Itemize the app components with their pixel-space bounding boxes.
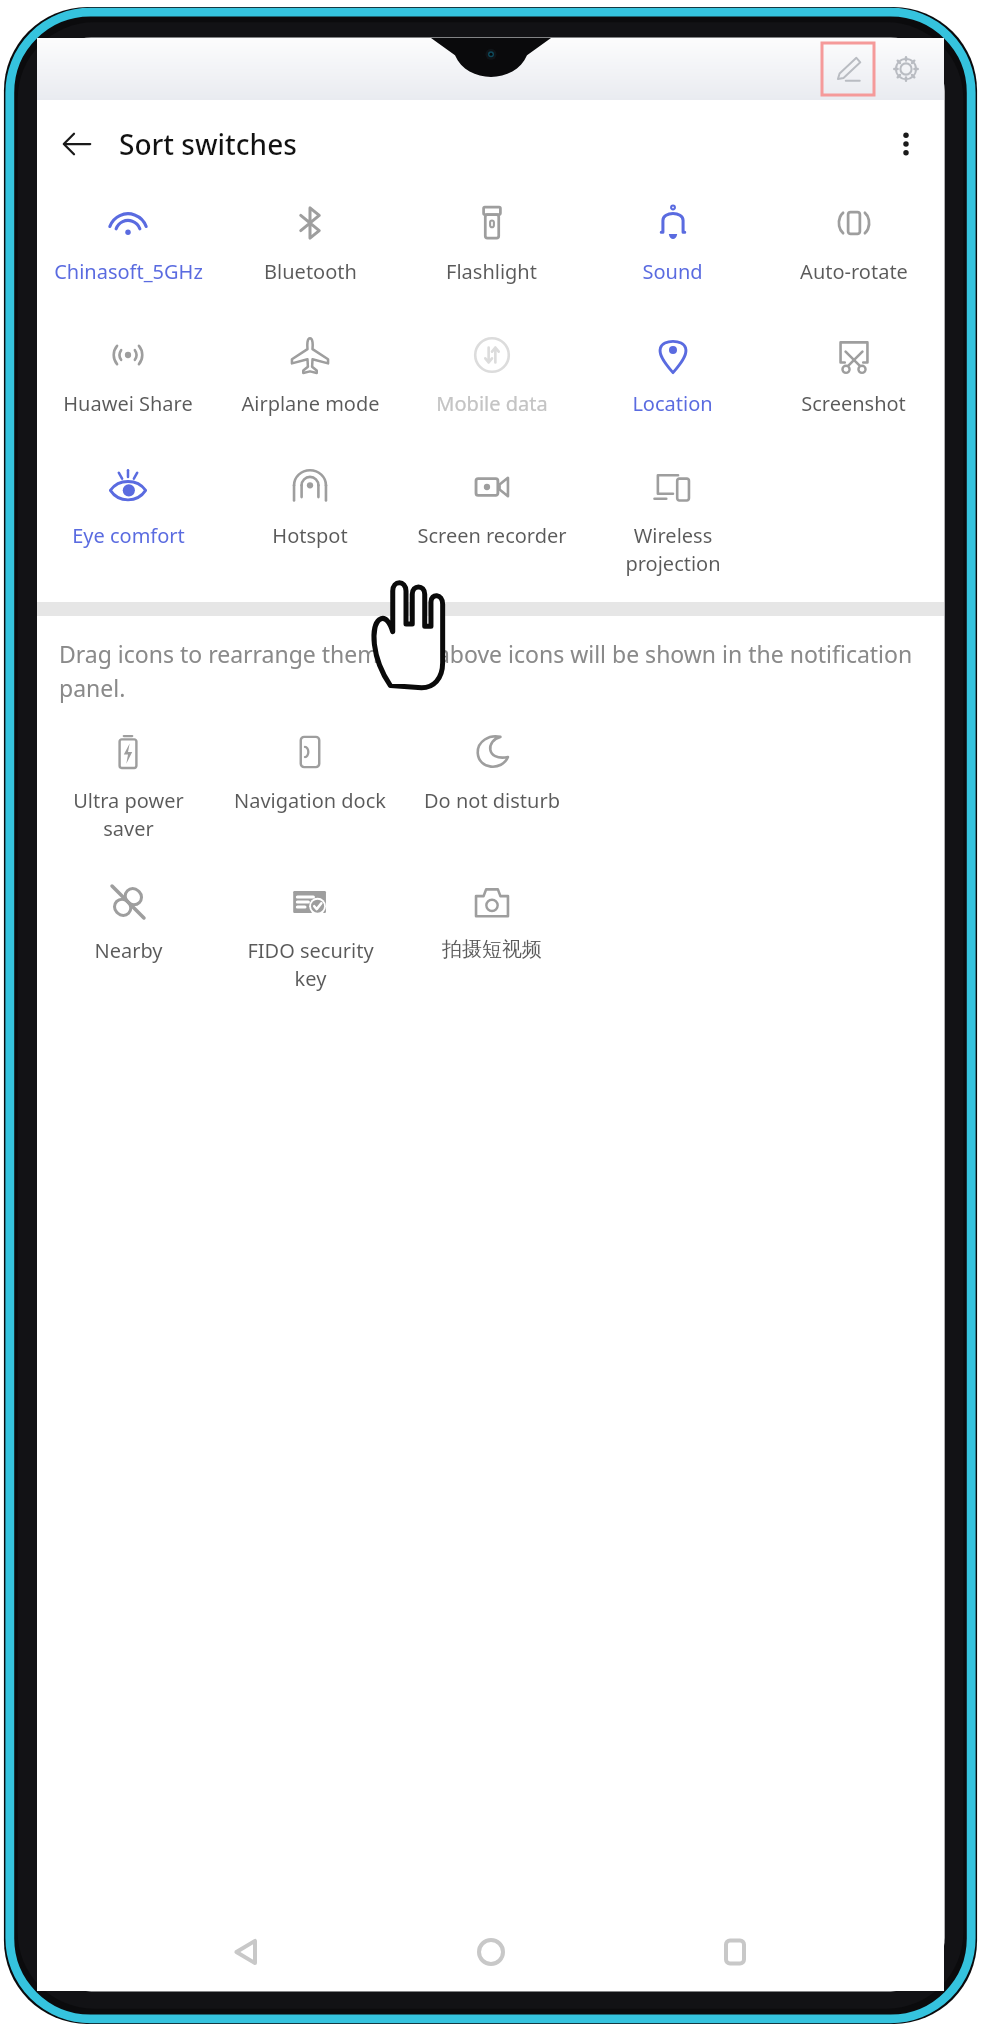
staticText: Wireless projection bbox=[625, 522, 721, 577]
staticText: Navigation dock bbox=[234, 787, 386, 814]
staticText: Chinasoft_5GHz bbox=[54, 258, 203, 285]
staticText: Auto-rotate bbox=[800, 258, 908, 285]
button[interactable]: Location bbox=[582, 320, 763, 452]
staticText: Bluetooth bbox=[264, 258, 357, 285]
button[interactable]: Airplane mode bbox=[219, 320, 401, 452]
staticText: Drag icons to rearrange them. The above … bbox=[59, 638, 922, 703]
button[interactable]: 拍摄短视频 bbox=[401, 867, 582, 1017]
staticText: Eye comfort bbox=[72, 522, 185, 549]
button[interactable]: Navigation dock bbox=[219, 717, 401, 867]
staticText: Airplane mode bbox=[241, 390, 380, 417]
staticText: Mobile data bbox=[436, 390, 548, 417]
staticText: Hotspot bbox=[272, 522, 348, 549]
button[interactable]: Bluetooth bbox=[219, 188, 401, 320]
staticText: Do not disturb bbox=[424, 787, 560, 814]
button[interactable]: Screenshot bbox=[763, 320, 944, 452]
button[interactable]: Nearby bbox=[37, 867, 219, 1017]
button[interactable]: Screen recorder bbox=[401, 452, 582, 602]
staticText: Screenshot bbox=[801, 390, 906, 417]
button[interactable]: Chinasoft_5GHz bbox=[37, 188, 219, 320]
button[interactable]: Edit bbox=[822, 43, 874, 95]
button[interactable]: Home bbox=[456, 1917, 526, 1987]
staticText: Location bbox=[632, 390, 713, 417]
staticText: Ultra power saver bbox=[73, 787, 184, 842]
staticText: FIDO security key bbox=[247, 937, 374, 992]
button[interactable]: FIDO security key bbox=[219, 867, 401, 1017]
button[interactable]: Hotspot bbox=[219, 452, 401, 602]
staticText: Sort switches bbox=[119, 125, 297, 163]
staticText: Nearby bbox=[94, 937, 163, 964]
staticText: Sound bbox=[642, 258, 703, 285]
button[interactable]: Sound bbox=[582, 188, 763, 320]
button[interactable]: Huawei Share bbox=[37, 320, 219, 452]
staticText: Huawei Share bbox=[63, 390, 193, 417]
button[interactable]: Mobile data bbox=[401, 320, 582, 452]
button[interactable]: Back bbox=[211, 1917, 281, 1987]
button[interactable]: Eye comfort bbox=[37, 452, 219, 602]
staticText: Screen recorder bbox=[417, 522, 567, 549]
button[interactable]: Flashlight bbox=[401, 188, 582, 320]
button[interactable]: Wireless projection bbox=[582, 452, 763, 602]
button[interactable]: Back bbox=[49, 116, 105, 172]
button[interactable]: Recents bbox=[700, 1917, 770, 1987]
button[interactable]: Do not disturb bbox=[401, 717, 582, 867]
button[interactable]: Settings bbox=[884, 47, 928, 91]
button[interactable]: Ultra power saver bbox=[37, 717, 219, 867]
button[interactable]: Auto-rotate bbox=[763, 188, 944, 320]
staticText: Flashlight bbox=[446, 258, 537, 285]
staticText: 拍摄短视频 bbox=[442, 937, 542, 962]
button[interactable]: More options bbox=[880, 118, 932, 170]
